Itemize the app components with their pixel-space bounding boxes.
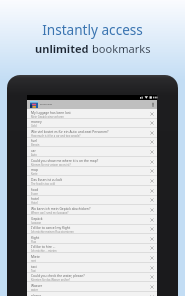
- staticText: Bookmarks: [40, 103, 53, 106]
- staticText: Auto: [31, 153, 37, 157]
- staticText: please: [31, 293, 42, 296]
- button[interactable]: fuel: [27, 137, 157, 147]
- button[interactable]: car: [27, 147, 157, 157]
- button[interactable]: map: [27, 166, 157, 176]
- staticText: Flug: [31, 240, 37, 244]
- button[interactable]: Remove bookmark: [147, 195, 157, 205]
- button[interactable]: Remove bookmark: [147, 263, 157, 273]
- staticText: unlimited: [35, 41, 92, 56]
- button[interactable]: Remove bookmark: [147, 137, 157, 147]
- staticText: Wie viel kostet es für ein Auto und zwei…: [31, 129, 109, 133]
- staticText: Karte: [31, 172, 38, 176]
- button[interactable]: Miete: [27, 253, 157, 263]
- button[interactable]: Das Essen ist zu kalt: [27, 176, 157, 186]
- staticText: car: [31, 148, 36, 152]
- button[interactable]: I'd like to cancel my flight: [27, 224, 157, 234]
- button[interactable]: Remove bookmark: [147, 128, 157, 138]
- staticText: Geld: [31, 124, 37, 128]
- staticText: Could you show me where it is on the map…: [31, 158, 99, 162]
- button[interactable]: Remove bookmark: [147, 176, 157, 186]
- button[interactable]: Remove bookmark: [147, 292, 157, 296]
- button[interactable]: Remove bookmark: [147, 157, 157, 167]
- button[interactable]: Gepäck: [27, 215, 157, 225]
- staticText: Benzin: [31, 143, 40, 147]
- button[interactable]: Remove bookmark: [147, 224, 157, 234]
- button[interactable]: flight: [27, 234, 157, 244]
- button[interactable]: Remove bookmark: [147, 243, 157, 253]
- staticText: Ich möchte meinen Flug stornieren: [31, 230, 74, 234]
- button[interactable]: food: [27, 186, 157, 196]
- staticText: Wasser: [31, 283, 43, 287]
- button[interactable]: Remove bookmark: [147, 186, 157, 196]
- button[interactable]: please: [27, 292, 157, 296]
- button[interactable]: taxi: [27, 263, 157, 273]
- staticText: Ich möchte ... mieten: [31, 249, 57, 253]
- button[interactable]: Remove bookmark: [147, 109, 157, 119]
- staticText: Taxi: [31, 269, 36, 273]
- staticText: How much is it for a car and two people?: [31, 134, 81, 138]
- staticText: water: [31, 288, 38, 292]
- staticText: food: [31, 187, 39, 191]
- button[interactable]: Wo kann ich mein Gepäck abschicken?: [27, 205, 157, 215]
- staticText: Miete: [31, 254, 40, 258]
- staticText: map: [31, 167, 38, 171]
- button[interactable]: Could you show me where it is on the map…: [27, 157, 157, 167]
- button[interactable]: Remove bookmark: [147, 234, 157, 244]
- button[interactable]: Remove bookmark: [147, 147, 157, 157]
- staticText: Gepäck: [31, 216, 43, 220]
- staticText: Können Sie mir zeigen wo es ist?: [31, 163, 71, 167]
- button[interactable]: Wasser: [27, 282, 157, 292]
- staticText: I'd like to hire ...: [31, 244, 56, 248]
- button[interactable]: Could you check the water, please?: [27, 272, 157, 282]
- staticText: Das Essen ist zu kalt: [31, 177, 63, 181]
- staticText: Where can I send my luggage?: [31, 211, 69, 215]
- staticText: The food is too cold: [31, 182, 55, 186]
- button[interactable]: Remove bookmark: [147, 253, 157, 263]
- button[interactable]: My luggage has been lost: [27, 109, 157, 119]
- staticText: taxi: [31, 264, 37, 268]
- staticText: Instantly access: [42, 20, 143, 39]
- staticText: rent: [31, 259, 37, 263]
- staticText: bookmarks: [92, 41, 151, 56]
- staticText: hotel: [31, 196, 39, 200]
- staticText: Hotel: [31, 201, 38, 205]
- staticText: money: [31, 119, 42, 123]
- staticText: Could you check the water, please?: [31, 273, 85, 277]
- button[interactable]: money: [27, 118, 157, 128]
- button[interactable]: Remove bookmark: [147, 166, 157, 176]
- button[interactable]: Remove bookmark: [147, 215, 157, 225]
- button[interactable]: I'd like to hire ...: [27, 243, 157, 253]
- staticText: Wo kann ich mein Gepäck abschicken?: [31, 206, 91, 210]
- button[interactable]: Remove bookmark: [147, 282, 157, 292]
- staticText: Essen: [31, 192, 38, 196]
- button[interactable]: Remove bookmark: [147, 205, 157, 215]
- staticText: Mein Gepäck ging verloren: [31, 115, 64, 119]
- button[interactable]: Remove bookmark: [147, 118, 157, 128]
- staticText: fuel: [31, 138, 37, 142]
- staticText: I'd like to cancel my flight: [31, 225, 71, 229]
- button[interactable]: More options: [149, 100, 157, 109]
- staticText: Könnten Sie das Wasser prüfen?: [31, 278, 71, 282]
- button[interactable]: hotel: [27, 195, 157, 205]
- button[interactable]: Wie viel kostet es für ein Auto und zwei…: [27, 128, 157, 138]
- staticText: luggage: [31, 221, 41, 225]
- staticText: flight: [31, 235, 40, 239]
- button[interactable]: Remove bookmark: [147, 272, 157, 282]
- staticText: My luggage has been lost: [31, 110, 71, 114]
